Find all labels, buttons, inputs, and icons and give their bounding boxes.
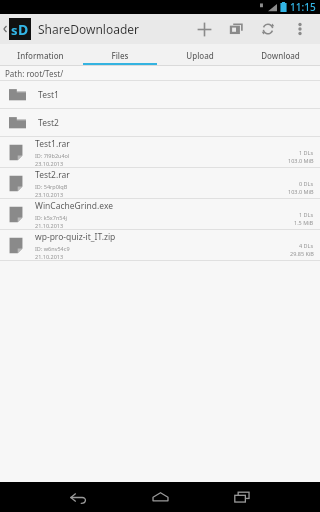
staticText: Files	[111, 50, 129, 61]
button[interactable]: Home	[142, 483, 178, 511]
staticText: 4 DLs	[299, 242, 314, 249]
staticText: 23.10.2013	[35, 160, 64, 167]
staticText: ID: w6nv54c9	[35, 245, 70, 252]
staticText: 21.10.2013	[35, 253, 64, 260]
staticText: 0 DLs	[299, 180, 314, 187]
staticText: 1 DLs	[299, 149, 314, 156]
staticText: ID: 54rp0lqB	[35, 183, 68, 190]
button[interactable]: wp-pro-quiz-it_IT.zip	[0, 230, 320, 260]
button[interactable]: Download	[240, 44, 320, 66]
staticText: Test1.rar	[35, 138, 70, 150]
button[interactable]: Recent apps	[224, 483, 260, 511]
staticText: Upload	[186, 50, 214, 61]
button[interactable]: More options	[284, 14, 316, 44]
staticText: ShareDownloader	[38, 21, 140, 37]
staticText: s	[11, 21, 18, 39]
staticText: 29.85 KiB	[290, 250, 314, 257]
button[interactable]: New folder	[220, 14, 252, 44]
staticText: 1 DLs	[299, 211, 314, 218]
button[interactable]: Test2	[0, 109, 320, 136]
staticText: Download	[261, 50, 300, 61]
staticText: ID: k5x7n54j	[35, 214, 68, 221]
button[interactable]: Test1	[0, 81, 320, 108]
staticText: 103.0 MiB	[288, 188, 314, 195]
staticText: WinCacheGrind.exe	[35, 200, 114, 212]
staticText: ID: 7l9b2u4ol	[35, 152, 70, 159]
staticText: 23.10.2013	[35, 191, 64, 198]
staticText: Path: root/Test/	[5, 68, 64, 79]
staticText: 1.5 MiB	[294, 219, 314, 226]
staticText: 21.10.2013	[35, 222, 64, 229]
button[interactable]: Files	[80, 44, 160, 66]
button[interactable]: Refresh	[252, 14, 284, 44]
button[interactable]: Test2.rar	[0, 168, 320, 198]
button[interactable]: Back	[60, 483, 96, 511]
staticText: 11:15	[290, 0, 316, 14]
staticText: Test2	[38, 117, 59, 129]
staticText: wp-pro-quiz-it_IT.zip	[35, 231, 116, 243]
button[interactable]: Add	[188, 14, 220, 44]
button[interactable]: Information	[0, 44, 80, 66]
staticText: Information	[17, 50, 64, 61]
button[interactable]: WinCacheGrind.exe	[0, 199, 320, 229]
staticText: Test1	[38, 89, 59, 101]
button[interactable]: Upload	[160, 44, 240, 66]
button[interactable]: Test1.rar	[0, 137, 320, 167]
staticText: Test2.rar	[35, 169, 70, 181]
staticText: 103.0 MiB	[288, 157, 314, 164]
staticText: D	[18, 20, 29, 39]
